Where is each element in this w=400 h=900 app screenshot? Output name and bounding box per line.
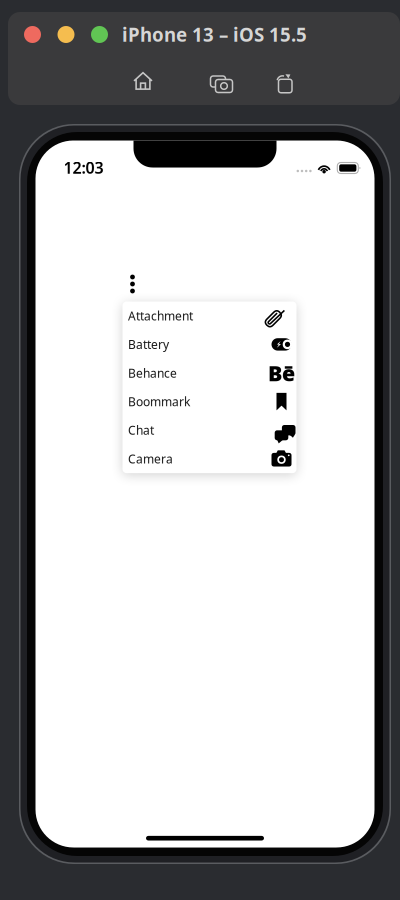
button[interactable]: Attachment (122, 301, 296, 330)
staticText: Camera (128, 451, 173, 467)
staticText: iPhone 13 – iOS 15.5 (122, 22, 307, 47)
button[interactable]: Home (122, 67, 164, 95)
button[interactable]: Battery (122, 330, 296, 359)
staticText: Attachment (128, 308, 193, 324)
button[interactable]: Close window (24, 26, 41, 43)
button[interactable]: Screenshot (198, 67, 240, 95)
button[interactable]: Minimize window (57, 26, 74, 43)
staticText: 12:03 (63, 157, 103, 178)
button[interactable]: Boommark (122, 387, 296, 416)
staticText: Behance (128, 365, 177, 381)
button[interactable]: More options (122, 274, 142, 293)
staticText: Chat (128, 422, 154, 438)
staticText: Bē (268, 359, 295, 387)
button[interactable]: Chat (122, 416, 296, 444)
button[interactable]: Behance (122, 359, 296, 387)
button[interactable]: Camera (122, 444, 296, 473)
staticText: Battery (128, 336, 169, 352)
button[interactable]: Zoom window (91, 26, 108, 43)
staticText: Boommark (128, 394, 190, 409)
button[interactable]: Rotate (262, 67, 304, 95)
